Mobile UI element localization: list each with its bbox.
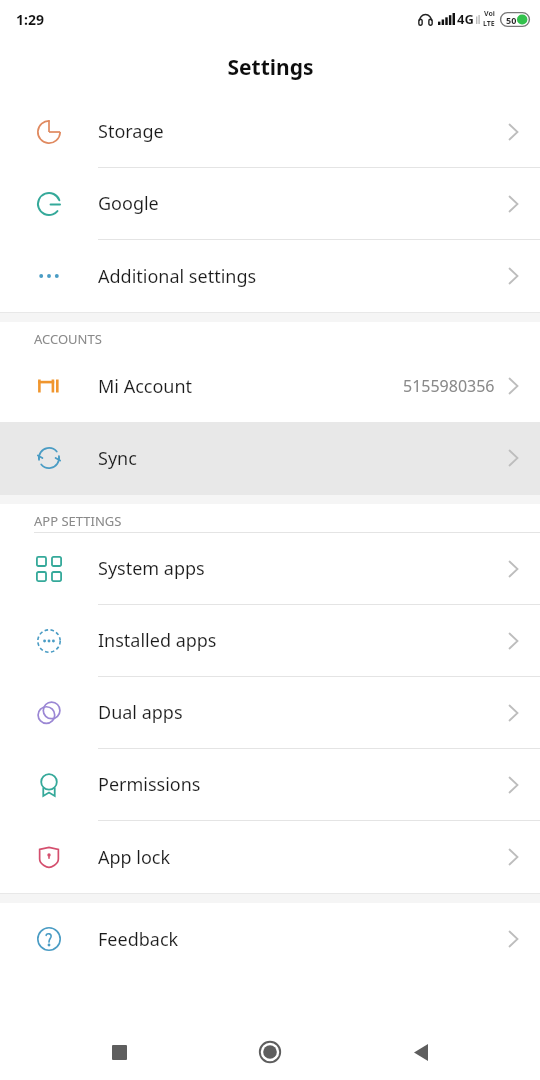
button[interactable]: Back: [389, 1024, 453, 1080]
button[interactable]: Google: [0, 168, 540, 240]
staticText: Additional settings: [98, 264, 257, 289]
staticText: App lock: [98, 845, 171, 870]
staticText: APP SETTINGS: [34, 512, 122, 530]
button[interactable]: App lock: [0, 821, 540, 893]
button[interactable]: System apps: [0, 533, 540, 605]
staticText: 50: [506, 14, 517, 26]
button[interactable]: Storage: [0, 96, 540, 168]
button[interactable]: Home: [238, 1024, 302, 1080]
button[interactable]: Feedback: [0, 903, 540, 975]
staticText: Storage: [98, 119, 164, 144]
staticText: Settings: [227, 53, 314, 82]
staticText: Voi: [484, 9, 495, 19]
staticText: LTE: [483, 19, 495, 29]
button[interactable]: Dual apps: [0, 677, 540, 749]
staticText: ACCOUNTS: [34, 330, 102, 348]
button[interactable]: Installed apps: [0, 605, 540, 677]
staticText: Feedback: [98, 927, 179, 952]
staticText: Google: [98, 191, 159, 216]
staticText: 4G: [457, 10, 474, 28]
button[interactable]: Permissions: [0, 749, 540, 821]
staticText: Mi Account: [98, 374, 193, 399]
button[interactable]: Recent apps: [87, 1024, 151, 1080]
staticText: System apps: [98, 556, 205, 581]
staticText: Dual apps: [98, 700, 183, 725]
staticText: Installed apps: [98, 628, 217, 653]
staticText: 5155980356: [403, 375, 495, 397]
button[interactable]: Mi Account: [0, 350, 540, 422]
button[interactable]: Sync: [0, 422, 540, 494]
staticText: Permissions: [98, 772, 201, 797]
staticText: Sync: [98, 446, 137, 471]
button[interactable]: Additional settings: [0, 240, 540, 312]
staticText: 1:29: [16, 10, 44, 29]
